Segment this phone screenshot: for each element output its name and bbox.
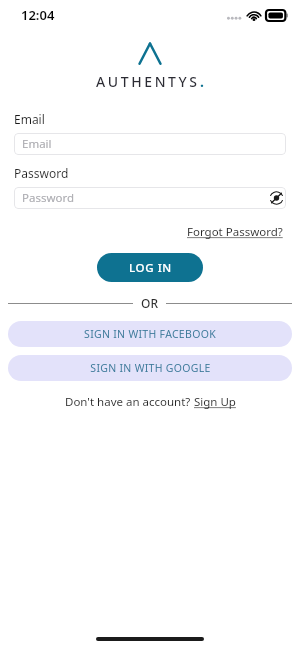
staticText: SIGN IN WITH GOOGLE: [90, 361, 211, 375]
staticText: Password: [22, 190, 75, 206]
staticText: AUTHENTYS: [96, 72, 200, 91]
staticText: Password: [14, 165, 69, 181]
staticText: LOG IN: [129, 260, 172, 276]
button[interactable]: Show password: [266, 188, 286, 208]
button[interactable]: Password: [14, 187, 286, 209]
staticText: Don't have an account?: [65, 394, 194, 410]
staticText: .: [200, 72, 204, 91]
staticText: SIGN IN WITH FACEBOOK: [84, 327, 216, 341]
staticText: Forgot Password?: [187, 224, 283, 240]
button[interactable]: SIGN IN WITH FACEBOOK: [8, 321, 292, 347]
button[interactable]: LOG IN: [97, 253, 203, 282]
staticText: Email: [14, 111, 45, 127]
button[interactable]: SIGN IN WITH GOOGLE: [8, 355, 292, 381]
button[interactable]: Sign Up: [194, 394, 236, 410]
staticText: Sign Up: [194, 394, 236, 410]
button[interactable]: Forgot Password?: [187, 223, 300, 241]
staticText: 12:04: [21, 6, 55, 24]
button[interactable]: Email: [14, 133, 286, 155]
staticText: Email: [22, 136, 52, 152]
staticText: OR: [141, 295, 158, 311]
